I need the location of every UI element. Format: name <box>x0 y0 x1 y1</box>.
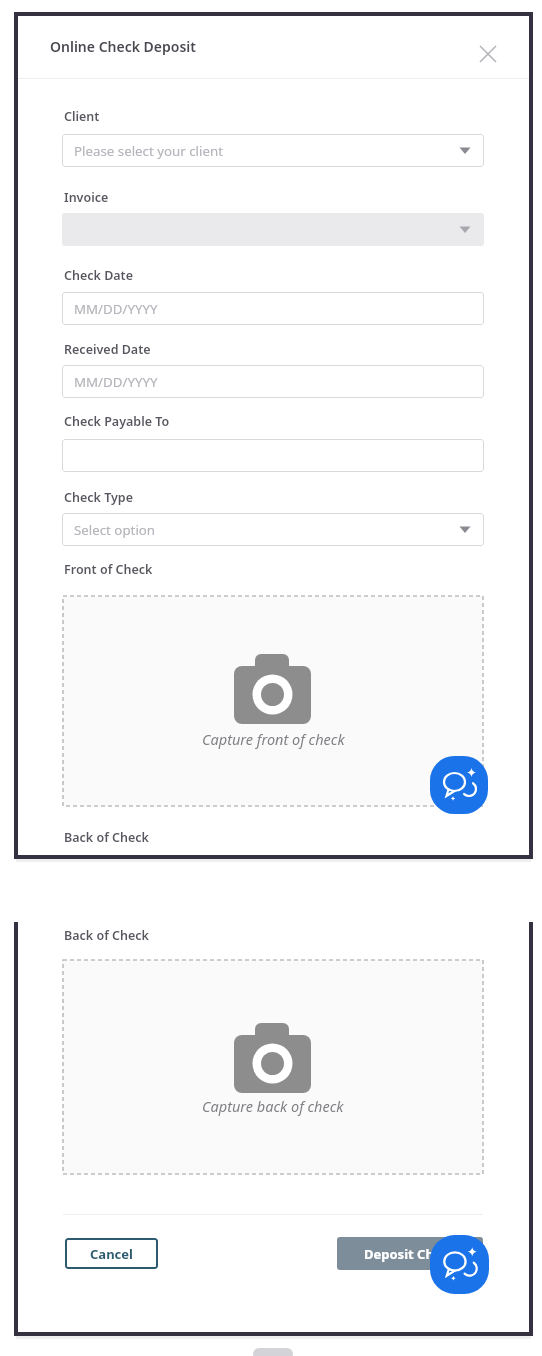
button[interactable] <box>62 439 484 472</box>
staticText: Invoice <box>64 189 109 206</box>
button[interactable] <box>430 1235 489 1294</box>
staticText: Check Date <box>64 267 133 284</box>
staticText: Select option <box>74 521 156 539</box>
button[interactable]: MM/DD/YYYY <box>62 365 484 398</box>
button[interactable] <box>62 213 484 246</box>
staticText: MM/DD/YYYY <box>74 373 158 391</box>
staticText: Online Check Deposit <box>50 37 196 56</box>
button[interactable]: Cancel <box>65 1238 158 1269</box>
button[interactable]: Please select your client <box>62 134 484 167</box>
staticText: Back of Check <box>64 829 149 846</box>
button[interactable]: MM/DD/YYYY <box>62 292 484 325</box>
staticText: Capture back of check <box>202 1096 344 1116</box>
staticText: Please select your client <box>74 142 223 160</box>
staticText: Check Type <box>64 489 133 506</box>
staticText: Deposit Check <box>364 1245 457 1263</box>
staticText: Capture front of check <box>202 729 345 749</box>
staticText: Client <box>64 108 100 125</box>
staticText: MM/DD/YYYY <box>74 300 158 318</box>
button[interactable] <box>430 756 488 814</box>
staticText: Back of Check <box>64 927 149 944</box>
button[interactable]: Deposit Check <box>337 1237 483 1270</box>
staticText: Check Payable To <box>64 413 170 430</box>
button[interactable] <box>474 40 502 68</box>
button[interactable]: Select option <box>62 513 484 546</box>
button[interactable] <box>63 960 483 1174</box>
staticText: Front of Check <box>64 561 153 578</box>
staticText: Received Date <box>64 341 151 358</box>
button[interactable] <box>63 596 483 806</box>
staticText: Cancel <box>90 1245 133 1263</box>
